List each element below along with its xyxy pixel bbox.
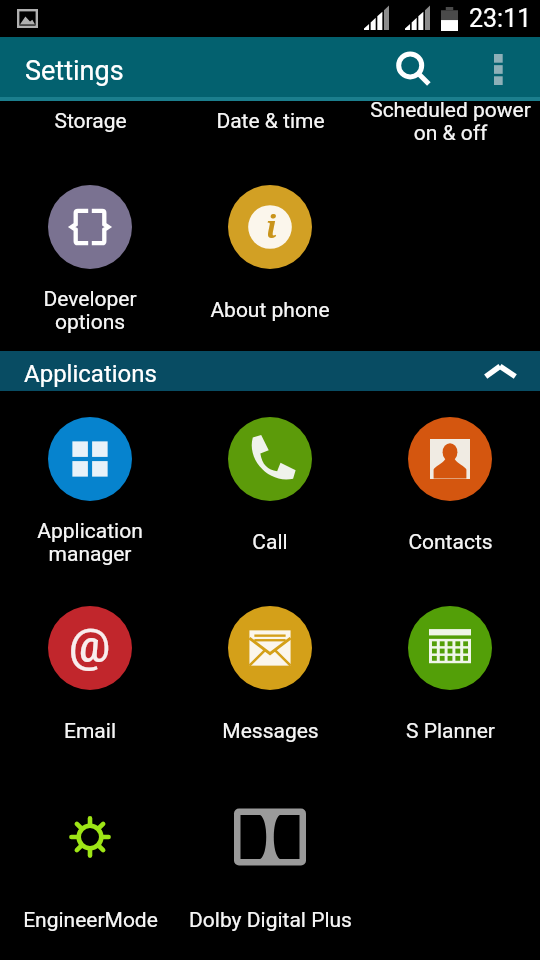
button[interactable]: Scheduled power on & off (360, 91, 540, 151)
staticText: S Planner (406, 719, 495, 744)
staticText: Scheduled power on & off (370, 98, 531, 145)
staticText: About phone (210, 298, 330, 323)
staticText: @ (69, 619, 111, 673)
button[interactable]: Search (384, 39, 444, 100)
staticText: 23:11 (469, 4, 532, 33)
staticText: Contacts (408, 530, 493, 555)
button[interactable]: Dolby Digital Plus (180, 771, 360, 960)
staticText: i (266, 206, 277, 247)
other: Screenshot captured (17, 9, 38, 28)
button[interactable]: Application manager (0, 393, 180, 583)
staticText: Messages (222, 719, 319, 744)
staticText: Date & time (216, 109, 325, 134)
button[interactable]: Applications (0, 351, 540, 391)
button[interactable]: @ (0, 582, 180, 772)
staticText: Developer options (43, 287, 137, 334)
button[interactable]: Messages (180, 582, 360, 772)
button[interactable]: More options (468, 39, 528, 100)
button[interactable]: EngineerMode (0, 771, 180, 960)
button[interactable]: Storage (0, 91, 180, 151)
button[interactable]: i (180, 161, 360, 351)
button[interactable]: Date & time (180, 91, 360, 151)
button[interactable]: Contacts (360, 393, 540, 583)
button[interactable]: S Planner (360, 582, 540, 772)
staticText: Applications (24, 360, 157, 388)
staticText: Storage (54, 109, 127, 134)
staticText: Settings (25, 55, 124, 87)
staticText: Application manager (37, 519, 143, 566)
staticText: Dolby Digital Plus (189, 908, 352, 933)
staticText: EngineerMode (23, 908, 158, 933)
staticText: Call (252, 530, 288, 555)
staticText: Email (64, 719, 116, 744)
button[interactable]: Developer options (0, 161, 180, 351)
other: Collapse section (482, 361, 518, 381)
button[interactable]: Call (180, 393, 360, 583)
